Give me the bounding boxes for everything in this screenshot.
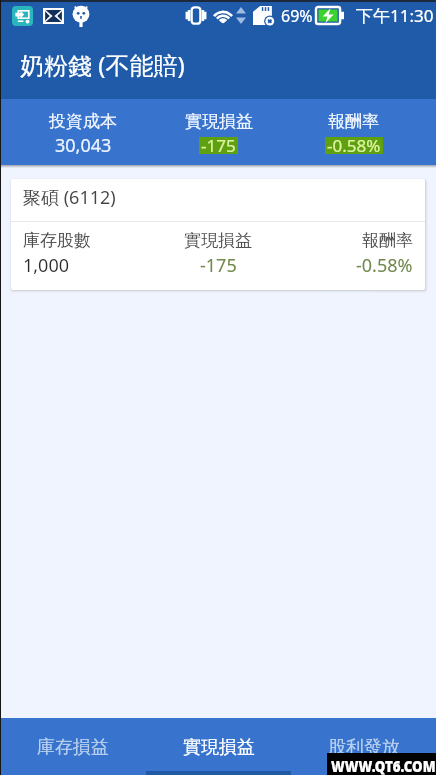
- staticText: -175: [201, 134, 236, 157]
- staticText: 下午11:30: [356, 4, 434, 27]
- staticText: 庫存損益: [37, 736, 109, 759]
- staticText: 實現損益: [183, 736, 255, 759]
- staticText: 庫存股數: [23, 230, 91, 251]
- button[interactable]: 股利發放: [291, 718, 436, 775]
- staticText: 報酬率: [328, 111, 379, 132]
- staticText: 報酬率: [362, 230, 413, 251]
- staticText: 實現損益: [184, 230, 252, 251]
- staticText: 奶粉錢 (不能賠): [20, 48, 185, 81]
- staticText: 投資成本: [49, 111, 117, 132]
- staticText: 1,000: [23, 253, 70, 278]
- staticText: 30,043: [55, 133, 112, 158]
- staticText: 股利發放: [328, 736, 400, 759]
- staticText: 聚碩 (6112): [23, 185, 116, 210]
- staticText: -0.58%: [327, 134, 381, 157]
- button[interactable]: 聚碩 (6112): [11, 179, 425, 290]
- staticText: -175: [200, 253, 237, 278]
- button[interactable]: 庫存損益: [0, 718, 146, 775]
- staticText: 69%: [281, 5, 313, 27]
- button[interactable]: 實現損益: [146, 718, 291, 775]
- staticText: 實現損益: [185, 111, 253, 132]
- staticText: WWW.QT6.COM: [331, 754, 435, 775]
- staticText: -0.58%: [356, 253, 413, 278]
